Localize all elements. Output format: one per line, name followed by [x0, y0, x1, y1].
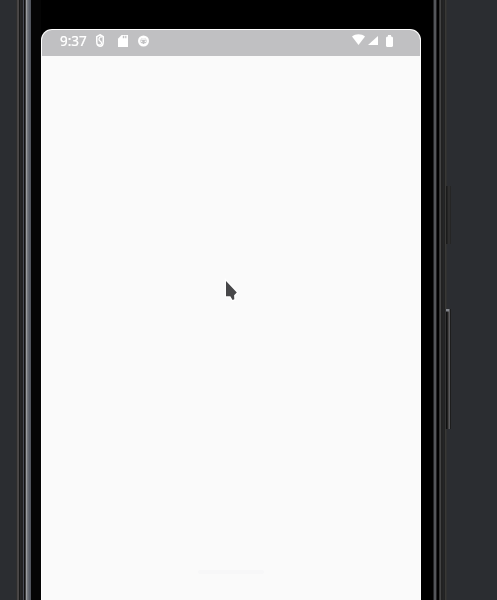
other: Volume buttons	[445, 309, 451, 429]
other: Power button	[445, 186, 451, 244]
staticText: 9:37	[60, 32, 87, 50]
